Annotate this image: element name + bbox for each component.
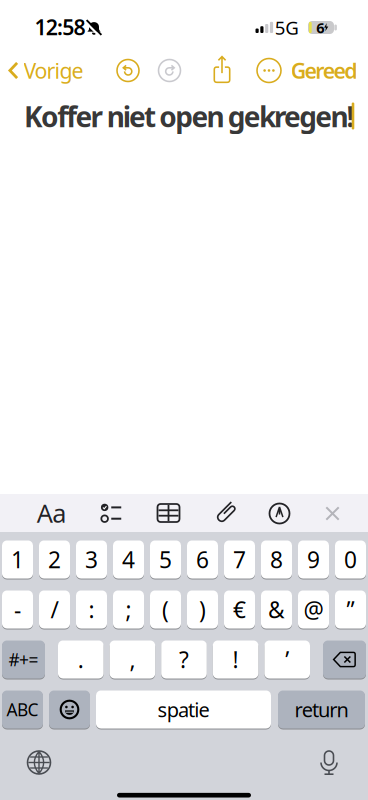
staticText: 5: [159, 544, 172, 574]
staticText: 9: [307, 544, 320, 574]
button[interactable]: More: [257, 58, 281, 82]
button[interactable]: spatie: [96, 690, 271, 729]
button[interactable]: #+=: [2, 640, 45, 679]
button[interactable]: Checklist: [100, 503, 122, 523]
button[interactable]: Close: [325, 506, 339, 520]
button[interactable]: Attach: [213, 506, 239, 520]
staticText: Vorige: [23, 56, 83, 85]
staticText: 0: [344, 544, 357, 574]
staticText: (: [162, 594, 169, 624]
staticText: /: [50, 594, 58, 624]
staticText: Aa: [37, 496, 66, 530]
button[interactable]: ’: [264, 640, 310, 679]
button[interactable]: €: [224, 590, 255, 629]
staticText: -: [14, 594, 21, 624]
button[interactable]: &: [261, 590, 292, 629]
button[interactable]: Share: [213, 55, 230, 83]
button[interactable]: ;: [113, 590, 144, 629]
staticText: ;: [125, 594, 131, 624]
button[interactable]: Format: [37, 496, 66, 530]
button[interactable]: 8: [261, 540, 292, 579]
button[interactable]: Redo: [158, 59, 180, 81]
button[interactable]: 2: [39, 540, 70, 579]
staticText: €: [233, 594, 246, 624]
button[interactable]: Dictate: [319, 750, 339, 775]
staticText: ,: [129, 644, 135, 674]
staticText: 6: [196, 544, 209, 574]
button[interactable]: 0: [335, 540, 366, 579]
staticText: .: [78, 644, 84, 674]
staticText: ”: [346, 594, 354, 624]
button[interactable]: /: [39, 590, 70, 629]
button[interactable]: 3: [76, 540, 107, 579]
staticText: @: [303, 594, 323, 624]
button[interactable]: ABC: [2, 690, 43, 729]
staticText: return: [294, 696, 348, 723]
staticText: 8: [270, 544, 283, 574]
button[interactable]: Delete: [323, 640, 366, 679]
button[interactable]: Markup: [269, 503, 289, 523]
button[interactable]: 6: [187, 540, 218, 579]
button[interactable]: Undo: [117, 59, 139, 81]
staticText: 5G: [275, 15, 299, 40]
button[interactable]: 1: [2, 540, 33, 579]
button[interactable]: ”: [335, 590, 366, 629]
staticText: Gereed: [291, 56, 357, 85]
button[interactable]: @: [298, 590, 329, 629]
button[interactable]: !: [213, 640, 258, 679]
staticText: #+=: [8, 648, 39, 671]
button[interactable]: 9: [298, 540, 329, 579]
button[interactable]: (: [150, 590, 181, 629]
staticText: 2: [48, 544, 61, 574]
button[interactable]: 5: [150, 540, 181, 579]
staticText: &: [268, 594, 285, 624]
button[interactable]: Gereed: [291, 56, 357, 85]
staticText: 3: [85, 544, 98, 574]
button[interactable]: return: [278, 690, 365, 729]
staticText: ’: [285, 644, 289, 674]
staticText: 6: [316, 18, 324, 37]
staticText: Koffer niet open gekregen!: [24, 98, 354, 135]
staticText: ): [199, 594, 206, 624]
button[interactable]: Emoji: [49, 690, 90, 729]
button[interactable]: Vorige: [8, 56, 83, 85]
staticText: 4: [122, 544, 135, 574]
button[interactable]: 7: [224, 540, 255, 579]
staticText: 1: [11, 544, 24, 574]
staticText: 12:58: [34, 13, 86, 41]
button[interactable]: 4: [113, 540, 144, 579]
staticText: spatie: [157, 696, 209, 723]
button[interactable]: :: [76, 590, 107, 629]
button[interactable]: .: [58, 640, 104, 679]
staticText: !: [233, 644, 239, 674]
button[interactable]: Next keyboard: [27, 751, 50, 774]
staticText: ?: [179, 644, 189, 674]
button[interactable]: ): [187, 590, 218, 629]
button[interactable]: -: [2, 590, 33, 629]
staticText: :: [88, 594, 94, 624]
button[interactable]: ,: [110, 640, 155, 679]
staticText: ABC: [6, 698, 39, 721]
staticText: 7: [233, 544, 246, 574]
button[interactable]: ?: [161, 640, 207, 679]
button[interactable]: Table: [157, 504, 179, 522]
